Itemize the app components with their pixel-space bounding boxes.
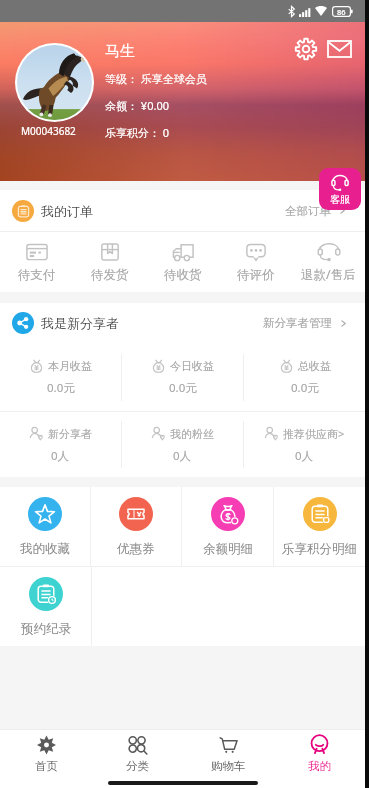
button[interactable]: Messages: [327, 40, 352, 58]
button[interactable]: 退款/售后: [292, 232, 365, 292]
staticText: 新分享者: [48, 427, 92, 441]
button[interactable]: 购物车: [183, 730, 274, 778]
button[interactable]: 我的收藏: [0, 487, 90, 566]
staticText: 客服: [330, 193, 350, 206]
button[interactable]: 乐享积分明细: [274, 487, 365, 566]
staticText: 0.0元: [169, 380, 197, 396]
button[interactable]: Settings: [295, 38, 317, 60]
staticText: 乐享积分明细: [282, 541, 357, 557]
staticText: 马生: [105, 42, 135, 61]
staticText: 我的收藏: [20, 541, 70, 557]
button[interactable]: 今日收益: [122, 343, 243, 411]
staticText: 等级： 乐享全球会员: [105, 71, 207, 86]
button[interactable]: 总收益: [244, 343, 365, 411]
staticText: 待发货: [91, 267, 129, 283]
button[interactable]: 优惠券: [91, 487, 181, 566]
staticText: 0.0元: [47, 380, 75, 396]
staticText: 我的: [308, 759, 331, 773]
button[interactable]: 待评价: [219, 232, 292, 292]
staticText: 推荐供应商>: [283, 426, 345, 441]
button[interactable]: 首页: [0, 730, 92, 778]
staticText: M00043682: [21, 124, 76, 138]
button[interactable]: 我的订单: [0, 190, 365, 231]
staticText: 0人: [173, 448, 192, 464]
staticText: 我的粉丝: [170, 427, 214, 441]
button[interactable]: 待收货: [146, 232, 219, 292]
staticText: 余额明细: [203, 541, 253, 557]
staticText: 预约纪录: [21, 621, 71, 637]
staticText: 0人: [295, 448, 314, 464]
staticText: 今日收益: [170, 359, 214, 373]
staticText: 余额： ¥0.00: [105, 98, 169, 113]
staticText: 0人: [51, 448, 70, 464]
button[interactable]: 推荐供应商>: [244, 412, 365, 477]
staticText: 优惠券: [117, 541, 155, 557]
button[interactable]: 待支付: [0, 232, 73, 292]
button[interactable]: 待发货: [73, 232, 146, 292]
staticText: 我的订单: [41, 203, 93, 219]
button[interactable]: 分类: [92, 730, 183, 778]
staticText: 总收益: [298, 359, 331, 373]
staticText: 分类: [126, 759, 149, 773]
button[interactable]: 预约纪录: [0, 567, 91, 646]
button[interactable]: 我的粉丝: [122, 412, 243, 477]
staticText: 86: [337, 7, 346, 17]
button[interactable]: 余额明细: [182, 487, 273, 566]
staticText: 新分享者管理: [263, 316, 332, 330]
button[interactable]: 新分享者: [0, 412, 121, 477]
button[interactable]: Customer service: [319, 168, 361, 210]
button[interactable]: 本月收益: [0, 343, 121, 411]
button[interactable]: 我的: [274, 730, 365, 778]
button[interactable]: 我是新分享者: [0, 303, 365, 343]
staticText: 全部订单: [285, 204, 331, 218]
staticText: 购物车: [211, 759, 246, 773]
staticText: 本月收益: [48, 359, 92, 373]
staticText: 退款/售后: [301, 266, 356, 283]
staticText: 待收货: [164, 267, 202, 283]
staticText: 乐享积分： 0: [105, 125, 170, 140]
staticText: 0.0元: [291, 380, 319, 396]
staticText: 我是新分享者: [41, 315, 119, 331]
staticText: 待支付: [18, 267, 56, 283]
staticText: 首页: [35, 759, 58, 773]
staticText: 待评价: [237, 267, 275, 283]
